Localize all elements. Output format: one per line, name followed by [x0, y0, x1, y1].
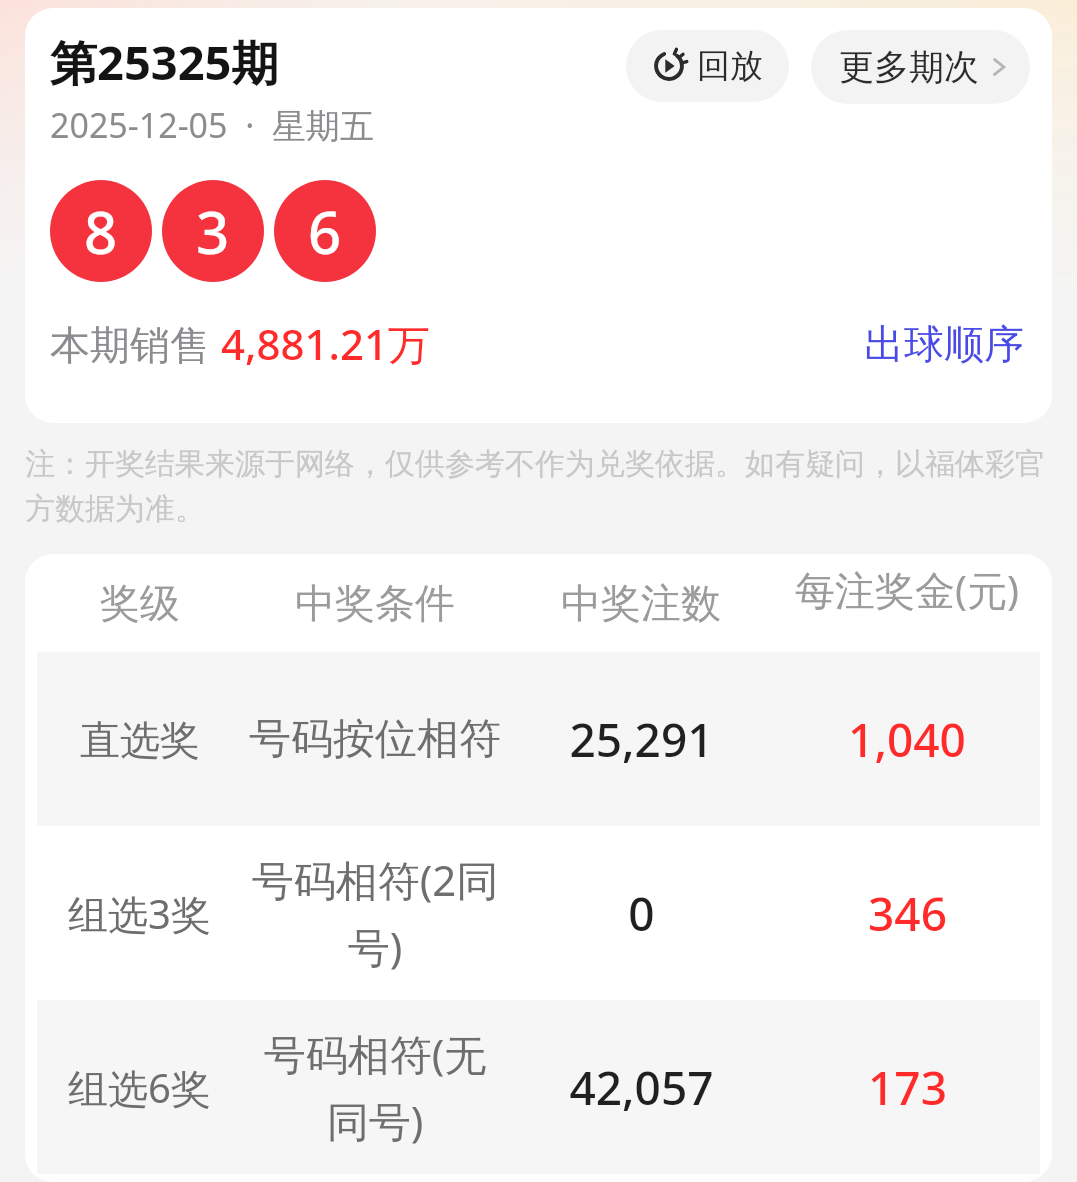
- button[interactable]: 组选6奖: [37, 1000, 1040, 1174]
- staticText: 6: [308, 192, 342, 271]
- staticText: 中奖注数: [561, 578, 721, 628]
- staticText: 346: [868, 882, 947, 945]
- staticText: 3: [196, 192, 230, 271]
- staticText: 奖级: [100, 578, 180, 628]
- staticText: 1,040: [848, 708, 966, 771]
- staticText: 0: [628, 882, 655, 945]
- staticText: 直选奖: [80, 715, 200, 765]
- button[interactable]: 出球顺序: [864, 319, 1024, 369]
- staticText: 号码相符(无同号): [248, 1025, 502, 1150]
- button[interactable]: 回放: [626, 30, 789, 102]
- staticText: 更多期次: [839, 45, 979, 89]
- staticText: 号码相符(2同号): [248, 851, 502, 976]
- staticText: 第25325期: [50, 30, 279, 94]
- staticText: 173: [868, 1056, 947, 1119]
- staticText: 回放: [697, 45, 763, 87]
- button[interactable]: 直选奖: [37, 652, 1040, 826]
- other: 回放: [652, 49, 686, 83]
- staticText: 42,057: [569, 1056, 714, 1119]
- button[interactable]: 组选3奖: [37, 826, 1040, 1000]
- button[interactable]: 更多期次: [811, 30, 1030, 104]
- staticText: 号码按位相符: [249, 713, 501, 766]
- staticText: 8: [84, 192, 118, 271]
- staticText: 出球顺序: [864, 319, 1024, 369]
- staticText: 本期销售: [50, 316, 221, 371]
- staticText: 25,291: [569, 708, 714, 771]
- staticText: 每注奖金(元): [795, 562, 1019, 617]
- staticText: 注：开奖结果来源于网络，仅供参考不作为兑奖依据。如有疑问，以福体彩官方数据为准。: [25, 445, 1052, 528]
- staticText: 组选3奖: [68, 886, 211, 941]
- staticText: 组选6奖: [68, 1060, 211, 1115]
- staticText: 4,881.21万: [221, 315, 431, 372]
- staticText: 2025-12-05 · 星期五: [50, 102, 374, 148]
- staticText: 中奖条件: [295, 578, 455, 628]
